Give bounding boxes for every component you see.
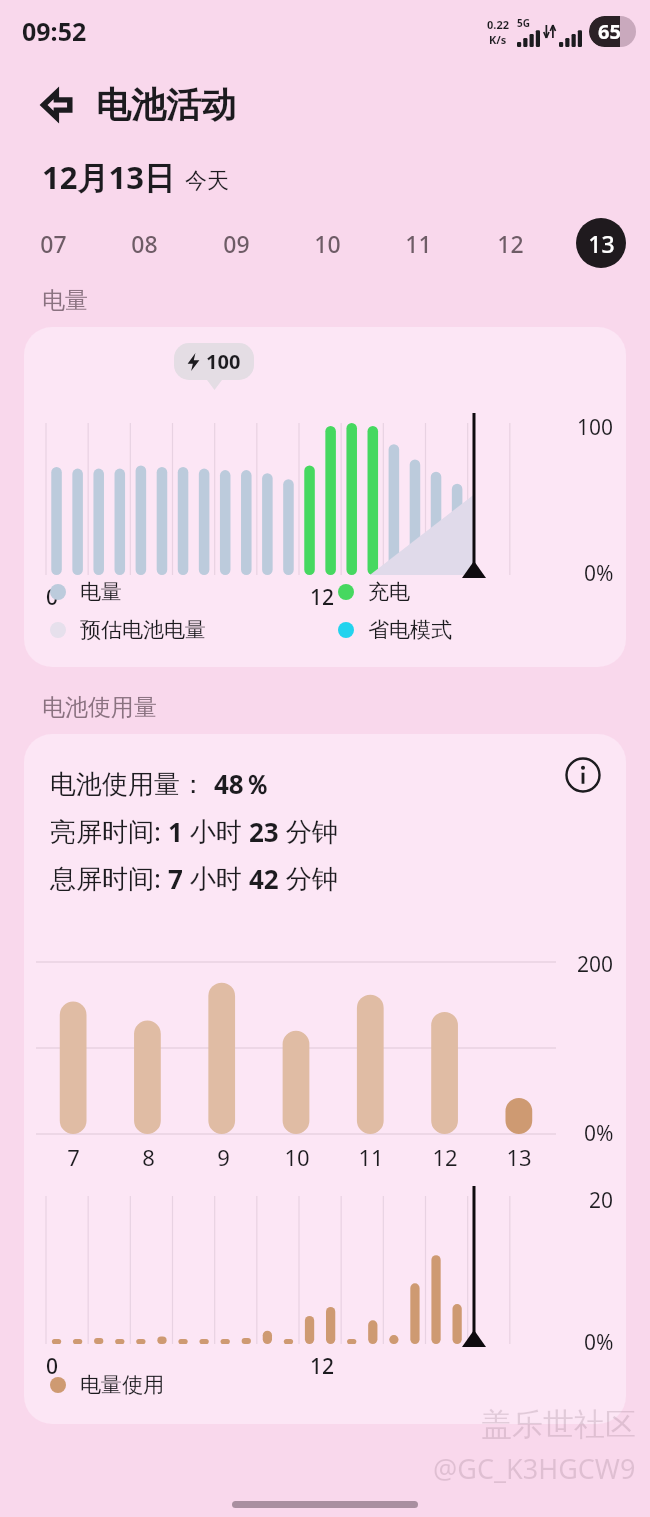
staticText: 0%	[584, 1328, 614, 1357]
staticText: 10	[284, 1142, 310, 1172]
staticText: 分钟	[279, 860, 338, 896]
staticText: 13	[506, 1142, 532, 1172]
staticText: 电池使用量	[42, 693, 157, 722]
button[interactable]: 返回	[34, 82, 80, 128]
button[interactable]: 09	[211, 218, 261, 268]
staticText: 电量	[42, 286, 88, 315]
staticText: 07	[40, 228, 67, 259]
staticText: 0	[46, 583, 59, 612]
staticText: 10	[314, 228, 341, 259]
staticText: 1	[168, 814, 183, 849]
staticText: 09:52	[22, 14, 87, 48]
staticText: 7	[67, 1142, 80, 1172]
staticText: 8	[142, 1142, 155, 1172]
staticText: 省电模式	[368, 617, 452, 643]
staticText: 今天	[185, 167, 229, 195]
staticText: 12	[432, 1142, 458, 1172]
staticText: 65	[598, 18, 621, 45]
staticText: @GC_K3HGCW9	[433, 1450, 636, 1487]
staticText: 11	[358, 1142, 384, 1172]
staticText: 小时	[183, 860, 249, 896]
staticText: 9	[217, 1142, 230, 1172]
button[interactable]: 12	[485, 218, 535, 268]
staticText: 12月13日	[42, 156, 175, 198]
button[interactable]: 11	[393, 218, 443, 268]
staticText: 小时	[183, 813, 249, 849]
staticText: 盖乐世社区	[481, 1405, 636, 1444]
staticText: 电量使用	[80, 1372, 164, 1398]
staticText: 48％	[214, 766, 270, 802]
staticText: 电池活动	[96, 83, 236, 127]
staticText: 7	[168, 861, 183, 896]
button[interactable]: 08	[119, 218, 169, 268]
staticText: 电量	[80, 579, 122, 605]
button[interactable]: 100	[24, 327, 626, 667]
staticText: 08	[131, 228, 158, 259]
button[interactable]: 13	[576, 218, 626, 268]
staticText: 100	[577, 413, 614, 442]
staticText: 5G	[517, 16, 530, 30]
staticText: 12	[310, 1352, 335, 1381]
staticText: 0.22	[487, 17, 509, 32]
button[interactable]: 信息	[558, 750, 608, 800]
staticText: 13	[588, 228, 615, 259]
staticText: 200	[577, 950, 614, 979]
button[interactable]: 10	[302, 218, 352, 268]
staticText: 息屏时间:	[50, 860, 168, 896]
staticText: 09	[223, 228, 250, 259]
staticText: 亮屏时间:	[50, 813, 168, 849]
staticText: 0%	[584, 1119, 614, 1148]
staticText: 0	[46, 1352, 59, 1381]
staticText: 12	[310, 583, 335, 612]
staticText: 预估电池电量	[80, 617, 206, 643]
staticText: K/s	[489, 32, 507, 47]
staticText: 分钟	[279, 813, 338, 849]
button[interactable]: 电池使用量：	[24, 734, 626, 1424]
staticText: 电池使用量：	[50, 768, 206, 801]
staticText: 42	[249, 861, 279, 896]
staticText: 11	[405, 228, 432, 259]
staticText: 12	[497, 228, 524, 259]
staticText: 0%	[584, 559, 614, 588]
staticText: 23	[249, 814, 279, 849]
staticText: 100	[206, 348, 241, 375]
staticText: 充电	[368, 579, 410, 605]
staticText: 20	[589, 1186, 614, 1215]
button[interactable]: 07	[28, 218, 78, 268]
